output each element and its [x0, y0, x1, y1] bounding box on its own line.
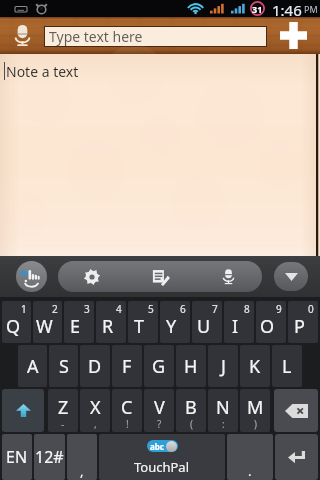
button[interactable]: V [144, 389, 174, 432]
staticText: 1:46 [272, 0, 302, 17]
button[interactable]: Hide keyboard [274, 262, 308, 291]
staticText: 8 [244, 302, 250, 316]
staticText: X [90, 395, 101, 420]
staticText: R [102, 314, 114, 339]
button[interactable]: X [80, 389, 110, 432]
button[interactable]: P [288, 301, 318, 343]
staticText: 4 [116, 302, 122, 316]
staticText: A [27, 354, 39, 379]
staticText: Q [6, 314, 21, 339]
button[interactable]: Backspace [274, 389, 318, 432]
button[interactable]: M [240, 389, 270, 432]
staticText: Type text here [49, 27, 143, 46]
button[interactable]: EN [2, 434, 32, 480]
staticText: V [154, 395, 165, 420]
staticText: H [184, 354, 198, 379]
staticText: L [282, 354, 292, 379]
staticText: M [247, 395, 264, 420]
button[interactable]: Q [2, 301, 31, 343]
staticText: W [36, 314, 53, 339]
staticText: B [185, 395, 197, 420]
button[interactable]: Edit note [126, 261, 194, 292]
button[interactable]: A [18, 345, 47, 387]
staticText: U [197, 314, 211, 339]
button[interactable]: Voice input [0, 17, 44, 54]
staticText: S [59, 354, 69, 379]
button[interactable]: L [272, 345, 302, 387]
button[interactable]: N [208, 389, 238, 432]
staticText: 7 [212, 302, 218, 316]
button[interactable]: , [67, 434, 97, 480]
staticText: 1 [21, 302, 27, 316]
staticText: F [122, 354, 132, 379]
button[interactable]: U [192, 301, 222, 343]
staticText: I [232, 314, 239, 339]
button[interactable]: F [112, 345, 142, 387]
staticText: N [216, 395, 230, 420]
staticText: 12# [35, 446, 64, 468]
staticText: ? [157, 417, 162, 431]
staticText: J [221, 354, 226, 379]
staticText: G [152, 354, 166, 379]
button[interactable]: Type text here [45, 27, 266, 46]
button[interactable]: Enter [275, 434, 318, 480]
staticText: PM [304, 3, 318, 15]
staticText: E [70, 314, 81, 339]
button[interactable]: Switch input method [16, 261, 47, 292]
button[interactable]: T [128, 301, 158, 343]
staticText: 9 [276, 302, 282, 316]
button[interactable]: Voice typing [194, 261, 262, 292]
staticText: ( [190, 417, 193, 431]
button[interactable]: . [227, 434, 273, 480]
button[interactable]: W [33, 301, 62, 343]
button[interactable]: Z [48, 389, 78, 432]
button[interactable]: 12# [34, 434, 65, 480]
staticText: ! [126, 417, 129, 431]
button[interactable]: Settings [58, 261, 126, 292]
button[interactable]: Y [160, 301, 190, 343]
staticText: ) [254, 417, 257, 431]
staticText: , [94, 417, 97, 431]
staticText: 31 [252, 3, 263, 15]
button[interactable]: O [256, 301, 286, 343]
staticText: 5 [148, 302, 154, 316]
staticText: T [134, 314, 145, 339]
button[interactable]: R [96, 301, 126, 343]
staticText: Y [166, 314, 177, 339]
staticText: abc [150, 441, 164, 452]
button[interactable]: Shift [2, 389, 44, 432]
staticText: Z [58, 395, 69, 420]
staticText: 6 [180, 302, 186, 316]
button[interactable]: Add note [267, 17, 320, 54]
staticText: O [260, 314, 275, 339]
staticText: 2 [52, 302, 58, 316]
button[interactable]: abc [99, 434, 225, 480]
staticText: . [248, 462, 252, 480]
staticText: Note a text [6, 62, 79, 81]
button[interactable]: S [49, 345, 78, 387]
button[interactable]: K [240, 345, 270, 387]
staticText: TouchPal [134, 458, 190, 476]
button[interactable]: C [112, 389, 142, 432]
button[interactable]: D [80, 345, 110, 387]
button[interactable]: Note a text [0, 54, 320, 256]
staticText: EN [6, 446, 28, 468]
button[interactable]: I [224, 301, 254, 343]
button[interactable]: H [176, 345, 206, 387]
staticText: : [222, 417, 225, 431]
button[interactable]: G [144, 345, 174, 387]
staticText: D [88, 354, 102, 379]
staticText: 0 [308, 302, 314, 316]
button[interactable]: J [208, 345, 238, 387]
staticText: - [61, 417, 65, 431]
button[interactable]: E [64, 301, 94, 343]
staticText: K [249, 354, 261, 379]
button[interactable]: B [176, 389, 206, 432]
staticText: 3 [84, 302, 90, 316]
staticText: P [294, 314, 305, 339]
staticText: , [80, 462, 84, 480]
staticText: C [121, 395, 133, 420]
